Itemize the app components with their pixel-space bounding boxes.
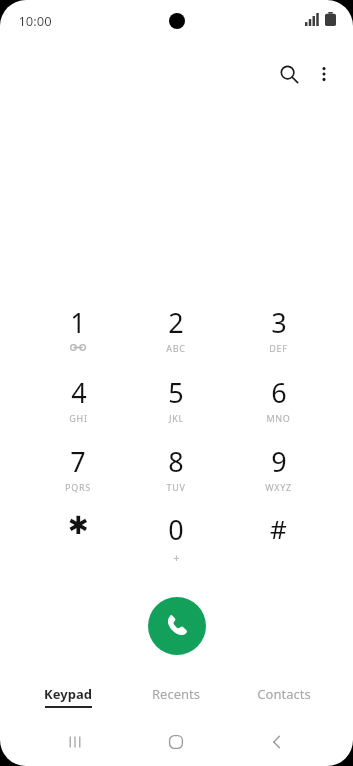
staticText: MNO — [266, 412, 291, 424]
button[interactable]: Key ✱ — [31, 501, 125, 563]
button[interactable]: Home — [158, 724, 194, 760]
button[interactable]: Key 1 — [31, 294, 125, 356]
button[interactable]: Key 9 — [231, 433, 325, 495]
staticText: Keypad — [44, 685, 92, 703]
staticText: 1 — [70, 304, 86, 341]
staticText: 7 — [70, 443, 86, 480]
staticText: PQRS — [65, 481, 91, 493]
staticText: DEF — [269, 342, 288, 354]
button[interactable]: Search — [271, 56, 307, 92]
staticText: # — [270, 511, 287, 546]
staticText: ✱ — [68, 511, 89, 540]
staticText: + — [173, 550, 180, 563]
button[interactable]: Key # — [231, 501, 325, 563]
staticText: JKL — [169, 412, 184, 424]
staticText: 0 — [168, 511, 184, 548]
staticText: 6 — [271, 374, 287, 411]
staticText: TUV — [166, 481, 186, 493]
button[interactable]: Key 2 — [129, 294, 223, 356]
staticText: Recents — [152, 685, 200, 703]
staticText: 2 — [168, 304, 184, 341]
button[interactable]: Key 3 — [231, 294, 325, 356]
button[interactable]: More options — [306, 56, 342, 92]
staticText: ABC — [166, 342, 186, 354]
staticText: 10:00 — [18, 12, 52, 30]
button[interactable]: Call — [148, 597, 206, 655]
button[interactable]: Contacts — [238, 676, 330, 716]
button[interactable]: Key 0 — [129, 501, 223, 563]
staticText: 9 — [271, 443, 287, 480]
button[interactable]: Key 4 — [31, 364, 125, 426]
staticText: 5 — [168, 374, 184, 411]
button[interactable]: Recent apps — [57, 724, 93, 760]
staticText: Contacts — [257, 685, 311, 703]
button[interactable]: Keypad — [22, 676, 114, 716]
button[interactable]: Back — [259, 724, 295, 760]
button[interactable]: Key 8 — [129, 433, 223, 495]
staticText: 4 — [71, 374, 87, 411]
staticText: 8 — [168, 443, 184, 480]
button[interactable]: Recents — [130, 676, 222, 716]
button[interactable]: Key 7 — [31, 433, 125, 495]
staticText: WXYZ — [265, 481, 292, 493]
staticText: GHI — [69, 412, 88, 424]
staticText: 3 — [271, 304, 287, 341]
button[interactable]: Key 6 — [231, 364, 325, 426]
button[interactable]: Key 5 — [129, 364, 223, 426]
